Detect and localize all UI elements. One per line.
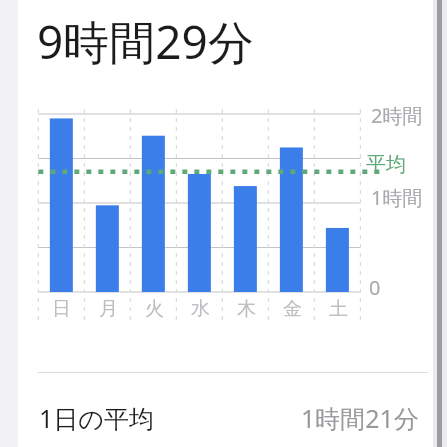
- other: Scroll: [433, 0, 447, 447]
- staticText: 平均: [366, 152, 406, 177]
- staticText: 金: [283, 297, 302, 321]
- staticText: 木: [237, 297, 256, 321]
- staticText: 土: [329, 297, 348, 321]
- staticText: 9時間29分: [37, 10, 254, 73]
- staticText: 1日の平均: [39, 401, 154, 435]
- staticText: 日: [52, 297, 71, 321]
- staticText: 1時間21分: [301, 401, 419, 435]
- staticText: 月: [99, 297, 118, 321]
- button[interactable]: 9時間29分: [18, 0, 433, 92]
- staticText: 2時間: [371, 102, 423, 129]
- staticText: 1時間: [371, 184, 423, 211]
- button[interactable]: 日: [18, 92, 433, 332]
- staticText: 0: [369, 274, 381, 301]
- staticText: 火: [145, 297, 164, 321]
- button[interactable]: 1日の平均: [18, 392, 433, 444]
- staticText: 水: [191, 297, 210, 321]
